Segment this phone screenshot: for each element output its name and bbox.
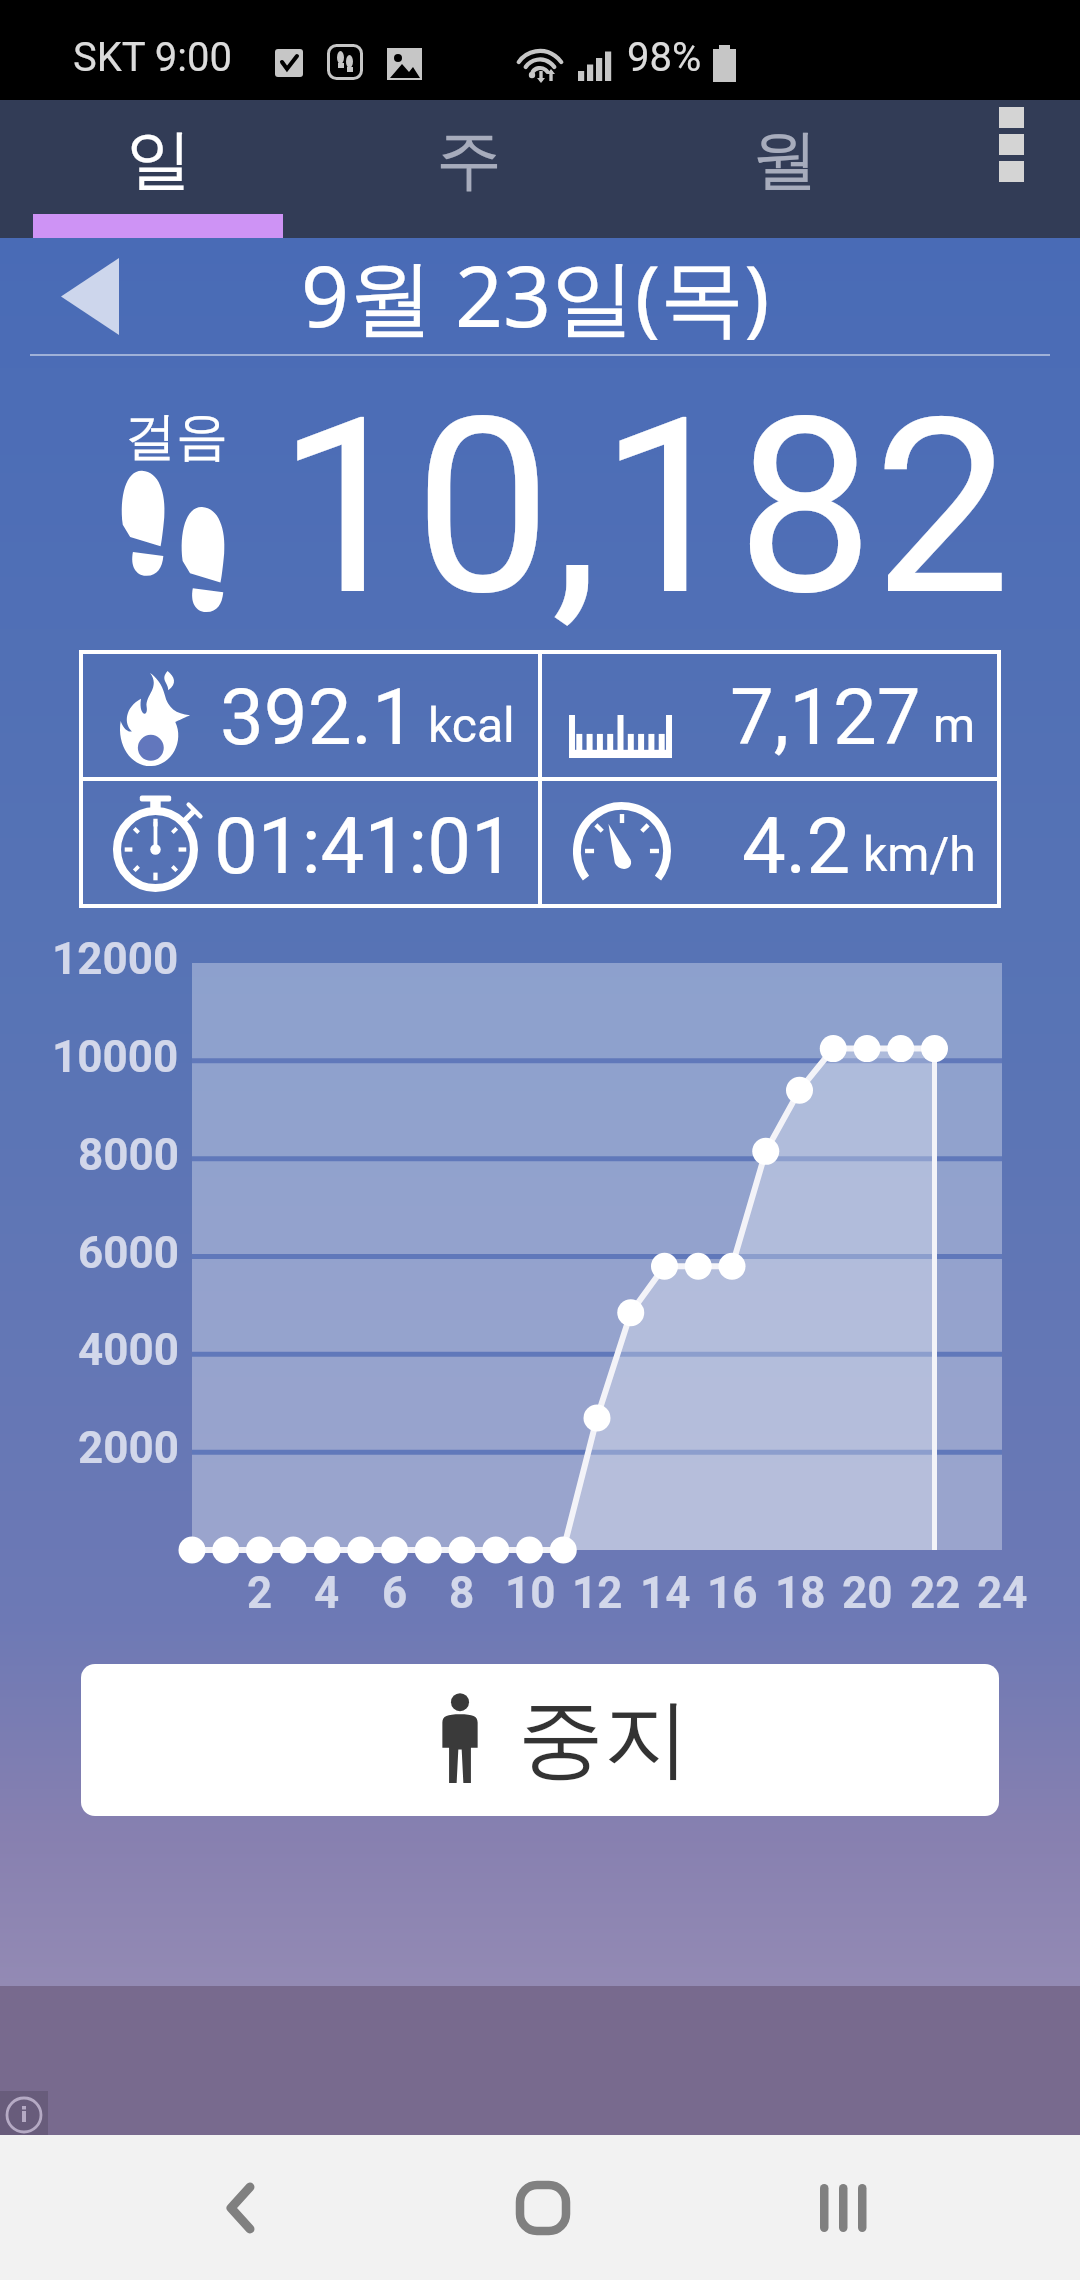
button[interactable]: Ad information [0,2091,48,2135]
staticText: 18 [775,1567,826,1619]
staticText: 8 [449,1567,475,1619]
staticText: 392.1 [220,672,416,763]
staticText: 10 [505,1567,556,1619]
staticText: 16 [707,1567,758,1619]
button[interactable]: 01:41:01 [81,781,538,906]
staticText: 일 [126,118,192,201]
button[interactable]: Recent apps [773,2135,913,2280]
button[interactable]: 주 [317,100,621,238]
staticText: 6 [382,1567,408,1619]
staticText: 20 [842,1567,893,1619]
staticText: 12000 [52,933,179,985]
staticText: 4000 [78,1324,179,1376]
button[interactable]: Previous day [20,238,160,356]
staticText: 4.2 [742,801,851,892]
staticText: 98% [627,34,702,81]
staticText: 22 [910,1567,961,1619]
staticText: 주 [436,118,502,201]
staticText: 6000 [78,1227,179,1279]
button[interactable]: 7,127 [542,652,999,777]
staticText: 7,127 [730,672,921,763]
staticText: 월 [752,118,818,201]
staticText: 걸음 [124,404,228,470]
staticText: 2000 [78,1422,179,1474]
button[interactable]: Home [473,2135,613,2280]
staticText: 01:41:01 [214,801,515,892]
staticText: 14 [640,1567,691,1619]
staticText: 10,182 [277,365,1011,651]
button[interactable]: More options [948,100,1080,238]
staticText: 2 [247,1567,273,1619]
button[interactable]: Back [170,2135,310,2280]
staticText: km/h [863,826,976,882]
staticText: 12 [572,1567,623,1619]
staticText: 4 [314,1567,340,1619]
staticText: 중지 [518,1685,690,1793]
staticText: 24 [977,1567,1028,1619]
staticText: 10000 [52,1031,179,1083]
button[interactable]: 392.1 [81,652,538,777]
button[interactable]: 중지 [81,1664,999,1816]
staticText: m [933,697,976,753]
button[interactable]: 일 [0,100,317,238]
button[interactable]: 월 [621,100,948,238]
staticText: kcal [428,697,515,753]
staticText: 9월 23일(목) [301,237,770,352]
staticText: SKT 9:00 [73,34,232,81]
button[interactable]: 4.2 [542,781,999,906]
staticText: 8000 [78,1129,179,1181]
